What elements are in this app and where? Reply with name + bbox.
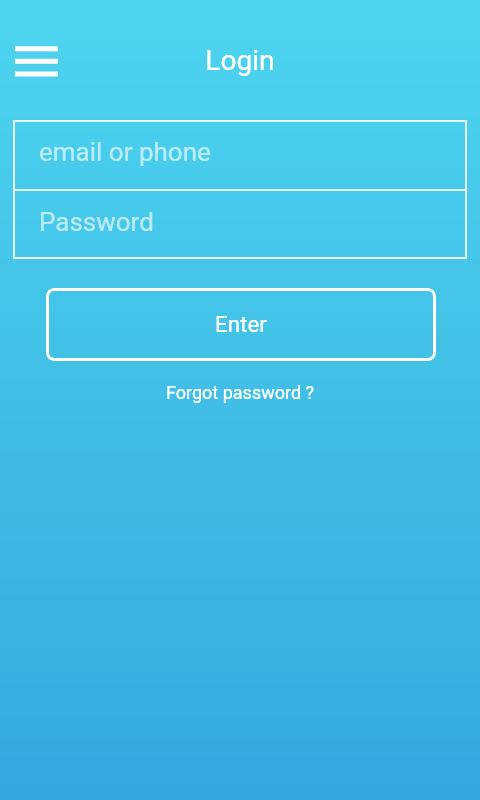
staticText: Forgot password ? bbox=[166, 382, 315, 403]
button[interactable]: Enter bbox=[46, 288, 436, 361]
staticText: email or phone bbox=[39, 137, 211, 167]
staticText: Login bbox=[0, 44, 480, 77]
staticText: Password bbox=[39, 207, 154, 237]
button[interactable]: Open navigation menu bbox=[9, 38, 65, 84]
button[interactable]: Forgot password ? bbox=[158, 380, 323, 405]
button[interactable]: Password bbox=[13, 191, 467, 259]
staticText: Enter bbox=[215, 311, 267, 337]
button[interactable]: email or phone bbox=[13, 120, 467, 189]
